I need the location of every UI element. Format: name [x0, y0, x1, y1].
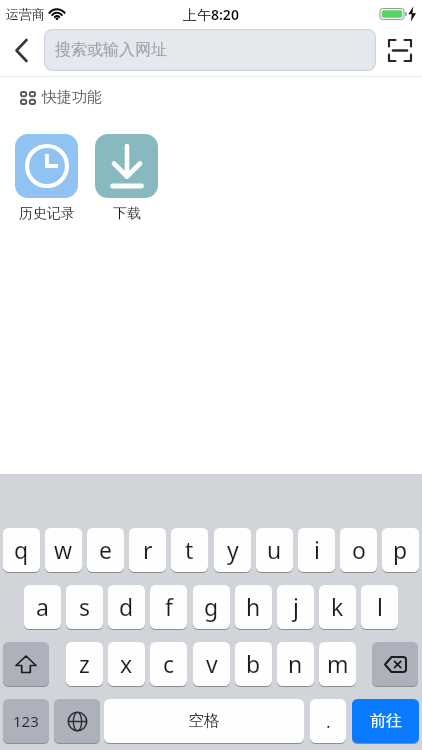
staticText: j [293, 591, 299, 622]
staticText: c [163, 648, 175, 679]
button[interactable]: q [3, 528, 40, 573]
button[interactable] [380, 35, 420, 71]
button[interactable]: p [382, 528, 419, 573]
button[interactable]: w [45, 528, 82, 573]
staticText: n [288, 648, 303, 679]
staticText: q [14, 534, 29, 565]
button[interactable]: t [171, 528, 208, 573]
staticText: r [143, 534, 153, 565]
button[interactable] [3, 642, 49, 687]
button[interactable]: x [108, 642, 145, 687]
staticText: l [377, 591, 383, 622]
button[interactable]: i [298, 528, 335, 573]
staticText: h [246, 591, 261, 622]
button[interactable] [372, 642, 418, 687]
button[interactable]: y [214, 528, 251, 573]
staticText: k [331, 591, 344, 622]
button[interactable]: z [66, 642, 103, 687]
button[interactable] [0, 27, 40, 76]
staticText: 运营商 [6, 6, 45, 22]
button[interactable]: 123 [3, 699, 49, 744]
staticText: 空格 [188, 711, 220, 731]
button[interactable]: e [87, 528, 124, 573]
button[interactable]: k [319, 585, 356, 630]
button[interactable]: s [66, 585, 103, 630]
staticText: . [326, 710, 331, 733]
staticText: u [267, 534, 282, 565]
button[interactable]: a [24, 585, 61, 630]
button[interactable]: n [277, 642, 314, 687]
staticText: f [165, 591, 173, 622]
staticText: o [352, 534, 366, 565]
staticText: w [54, 534, 73, 565]
button[interactable]: 历史记录 [15, 134, 78, 223]
staticText: v [206, 648, 218, 679]
staticText: s [79, 591, 91, 622]
button[interactable]: d [108, 585, 145, 630]
staticText: 搜索或输入网址 [55, 40, 167, 60]
staticText: x [120, 648, 133, 679]
button[interactable]: h [235, 585, 272, 630]
button[interactable]: . [310, 699, 346, 744]
staticText: e [99, 534, 112, 565]
staticText: d [119, 591, 134, 622]
button[interactable]: 前往 [352, 699, 419, 744]
button[interactable]: m [319, 642, 356, 687]
staticText: a [36, 591, 49, 622]
staticText: b [246, 648, 261, 679]
button[interactable]: o [340, 528, 377, 573]
staticText: p [393, 534, 408, 565]
staticText: 下载 [113, 205, 141, 223]
button[interactable]: f [150, 585, 187, 630]
button[interactable]: b [235, 642, 272, 687]
staticText: z [79, 648, 90, 679]
staticText: y [227, 534, 239, 565]
staticText: 快捷功能 [42, 88, 102, 107]
button[interactable]: c [150, 642, 187, 687]
button[interactable]: 搜索或输入网址 [44, 29, 376, 71]
button[interactable]: l [361, 585, 398, 630]
button[interactable]: r [129, 528, 166, 573]
button[interactable]: v [193, 642, 230, 687]
button[interactable]: u [256, 528, 293, 573]
button[interactable]: 下载 [95, 134, 158, 223]
button[interactable]: j [277, 585, 314, 630]
button[interactable]: g [193, 585, 230, 630]
staticText: 历史记录 [19, 205, 75, 223]
button[interactable]: 空格 [104, 699, 304, 744]
staticText: t [185, 534, 194, 565]
button[interactable] [54, 699, 100, 744]
staticText: 123 [13, 711, 39, 731]
staticText: 上午8:20 [183, 5, 239, 24]
staticText: g [204, 591, 219, 622]
staticText: i [314, 534, 320, 565]
staticText: m [327, 648, 349, 679]
staticText: 前往 [370, 711, 402, 731]
